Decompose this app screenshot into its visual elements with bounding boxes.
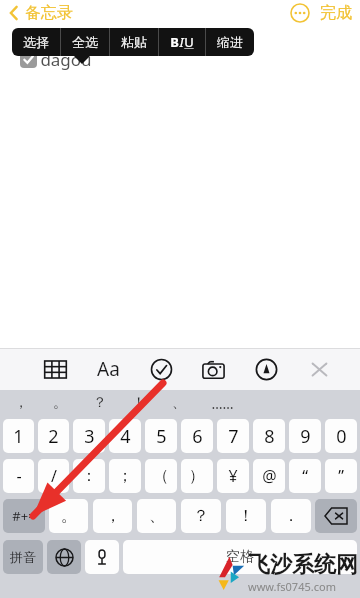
staticText: I bbox=[179, 33, 184, 51]
button[interactable]: 3 bbox=[73, 419, 105, 453]
staticText: 。 bbox=[53, 394, 67, 412]
staticText: ？ bbox=[93, 394, 107, 412]
button[interactable]: “ bbox=[289, 459, 321, 493]
staticText: 0 bbox=[336, 424, 347, 449]
button[interactable]: 、 bbox=[166, 394, 192, 412]
button[interactable]: 。 bbox=[47, 394, 73, 412]
staticText: “ bbox=[302, 465, 308, 487]
button[interactable]: ？ bbox=[181, 499, 221, 533]
staticText: 、 bbox=[172, 394, 186, 412]
staticText: ” bbox=[338, 465, 344, 487]
button[interactable]: ¥ bbox=[217, 459, 249, 493]
staticText: ！ bbox=[132, 394, 146, 412]
button[interactable]: 备忘录 bbox=[6, 3, 75, 23]
button[interactable]: #+= bbox=[3, 499, 45, 533]
button[interactable]: 4 bbox=[109, 419, 141, 453]
button[interactable]: Checklist bbox=[146, 354, 176, 384]
button[interactable]: ： bbox=[73, 459, 105, 493]
button[interactable]: ！ bbox=[226, 499, 266, 533]
staticText: ， bbox=[105, 506, 121, 526]
button[interactable]: Dismiss keyboard bbox=[304, 354, 334, 384]
button[interactable]: 5 bbox=[145, 419, 177, 453]
staticText: …… bbox=[211, 394, 234, 413]
button[interactable]: / bbox=[38, 459, 69, 493]
button[interactable]: ！ bbox=[126, 394, 152, 412]
button[interactable]: ？ bbox=[87, 394, 113, 412]
button[interactable]: 2 bbox=[38, 419, 69, 453]
staticText: 、 bbox=[149, 506, 165, 526]
button[interactable]: 8 bbox=[253, 419, 285, 453]
staticText: 选择 bbox=[23, 34, 49, 50]
button[interactable]: Backspace bbox=[315, 499, 357, 533]
staticText: #+= bbox=[12, 507, 36, 525]
staticText: 6 bbox=[192, 424, 203, 449]
button[interactable]: - bbox=[3, 459, 34, 493]
staticText: www.fs0745.com bbox=[248, 579, 336, 594]
staticText: 拼音 bbox=[10, 549, 36, 565]
staticText: ： bbox=[81, 466, 97, 486]
button[interactable]: ， bbox=[8, 394, 34, 412]
staticText: 。 bbox=[61, 506, 77, 526]
staticText: 5 bbox=[156, 424, 167, 449]
button[interactable]: 、 bbox=[137, 499, 176, 533]
staticText: ¥ bbox=[228, 465, 238, 487]
button[interactable]: Camera bbox=[198, 354, 228, 384]
staticText: B bbox=[170, 33, 179, 51]
staticText: （ bbox=[153, 466, 169, 486]
button[interactable]: ； bbox=[109, 459, 141, 493]
button[interactable]: 0 bbox=[325, 419, 357, 453]
button[interactable]: 缩进 bbox=[206, 28, 254, 56]
staticText: U bbox=[184, 33, 194, 51]
button[interactable]: ． bbox=[271, 499, 311, 533]
button[interactable]: 选择 bbox=[12, 28, 60, 56]
button[interactable]: 9 bbox=[289, 419, 321, 453]
button[interactable]: @ bbox=[253, 459, 285, 493]
staticText: ． bbox=[283, 506, 299, 526]
staticText: Aa bbox=[97, 356, 120, 382]
staticText: 8 bbox=[264, 424, 275, 449]
staticText: 完成 bbox=[320, 3, 352, 23]
button[interactable]: Markup bbox=[251, 354, 281, 384]
staticText: 2 bbox=[48, 424, 59, 449]
staticText: 全选 bbox=[72, 34, 98, 50]
staticText: ？ bbox=[193, 506, 209, 526]
button[interactable]: 7 bbox=[217, 419, 249, 453]
button[interactable]: ” bbox=[325, 459, 357, 493]
staticText: 9 bbox=[300, 424, 311, 449]
staticText: ； bbox=[117, 466, 133, 486]
button[interactable]: ） bbox=[181, 459, 213, 493]
button[interactable]: Checklist item checked bbox=[20, 51, 37, 68]
staticText: 7 bbox=[228, 424, 239, 449]
staticText: 3 bbox=[84, 424, 95, 449]
staticText: 空格 bbox=[226, 548, 254, 566]
staticText: - bbox=[16, 465, 22, 487]
button[interactable]: More options bbox=[290, 3, 310, 23]
staticText: / bbox=[51, 465, 57, 487]
staticText: 4 bbox=[120, 424, 131, 449]
button[interactable]: ， bbox=[93, 499, 132, 533]
button[interactable]: 1 bbox=[3, 419, 34, 453]
button[interactable]: 完成 bbox=[320, 3, 352, 23]
staticText: ） bbox=[189, 466, 205, 486]
button[interactable]: Aa bbox=[93, 354, 123, 384]
button[interactable]: 6 bbox=[181, 419, 213, 453]
button[interactable]: （ bbox=[145, 459, 177, 493]
button[interactable]: 。 bbox=[49, 499, 88, 533]
staticText: 飞沙系统网 bbox=[248, 551, 358, 579]
button[interactable]: Table bbox=[40, 354, 70, 384]
button[interactable]: 全选 bbox=[61, 28, 109, 56]
staticText: 粘贴 bbox=[121, 34, 147, 50]
staticText: 缩进 bbox=[217, 34, 243, 50]
button[interactable]: 拼音 bbox=[3, 540, 43, 574]
button[interactable]: B bbox=[159, 28, 205, 56]
button[interactable]: Switch language bbox=[47, 540, 81, 574]
button[interactable]: 粘贴 bbox=[110, 28, 158, 56]
button[interactable]: …… bbox=[205, 394, 240, 413]
staticText: 备忘录 bbox=[25, 3, 73, 23]
button[interactable]: Voice input bbox=[85, 540, 119, 574]
staticText: 1 bbox=[13, 424, 24, 449]
button[interactable]: 空格 bbox=[123, 540, 357, 574]
staticText: ， bbox=[14, 394, 28, 412]
staticText: @ bbox=[262, 465, 277, 487]
staticText: ！ bbox=[238, 506, 254, 526]
